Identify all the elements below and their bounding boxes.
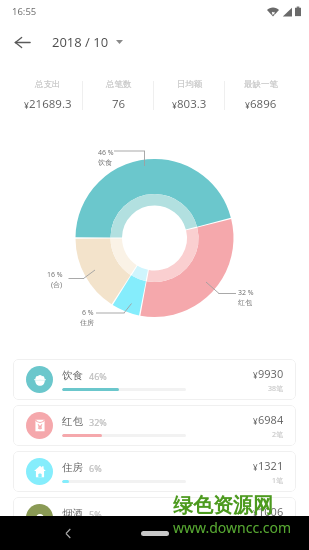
- staticText: 6 %: [82, 308, 94, 318]
- button[interactable]: 烟酒: [13, 497, 296, 538]
- staticText: 住房: [62, 461, 83, 474]
- button[interactable]: 2018 / 10: [44, 25, 131, 59]
- staticText: 46%: [89, 370, 107, 382]
- staticText: 32%: [89, 416, 107, 428]
- staticText: 6984: [258, 412, 284, 427]
- staticText: ¥: [172, 100, 177, 112]
- staticText: 46 %: [98, 148, 114, 158]
- staticText: 9930: [258, 366, 284, 381]
- staticText: 16 %: [47, 270, 63, 280]
- staticText: 红包: [238, 298, 252, 307]
- staticText: 绿色资源网: [173, 493, 273, 518]
- staticText: 6896: [250, 96, 277, 112]
- button[interactable]: 红包: [13, 405, 296, 446]
- staticText: 2018 / 10: [52, 33, 109, 51]
- staticText: 38笔: [268, 384, 284, 394]
- button[interactable]: Home: [141, 531, 169, 536]
- staticText: 5笔: [272, 522, 284, 532]
- button[interactable]: 住房: [13, 451, 296, 492]
- button[interactable]: Back: [56, 521, 80, 545]
- staticText: 2笔: [272, 430, 284, 440]
- staticText: 1笔: [272, 476, 284, 486]
- staticText: 住房: [80, 318, 94, 327]
- staticText: ¥: [253, 508, 258, 519]
- staticText: 饮食: [98, 158, 112, 167]
- staticText: 6%: [89, 462, 102, 474]
- staticText: 红包: [62, 415, 83, 428]
- staticText: 32 %: [238, 288, 254, 298]
- staticText: 803.3: [177, 96, 207, 112]
- staticText: (合): [51, 280, 63, 290]
- staticText: 最缺一笔: [244, 79, 278, 90]
- staticText: 饮食: [62, 369, 83, 382]
- staticText: ¥: [253, 462, 258, 473]
- staticText: 1006: [258, 504, 284, 519]
- staticText: ¥: [24, 100, 29, 112]
- staticText: 总支出: [35, 79, 61, 90]
- staticText: ¥: [245, 100, 250, 112]
- button[interactable]: Back: [0, 22, 44, 62]
- button[interactable]: 饮食: [13, 359, 296, 400]
- staticText: 16:55: [12, 5, 37, 18]
- staticText: ¥: [253, 370, 258, 381]
- staticText: 5%: [89, 508, 102, 520]
- staticText: 21689.3: [29, 96, 72, 112]
- staticText: 1321: [258, 458, 284, 473]
- staticText: 烟酒: [62, 507, 83, 520]
- staticText: 总笔数: [106, 79, 132, 90]
- staticText: 日均额: [177, 79, 203, 90]
- staticText: 76: [112, 96, 126, 112]
- staticText: www.downcc.com: [173, 518, 292, 537]
- staticText: ¥: [253, 416, 258, 427]
